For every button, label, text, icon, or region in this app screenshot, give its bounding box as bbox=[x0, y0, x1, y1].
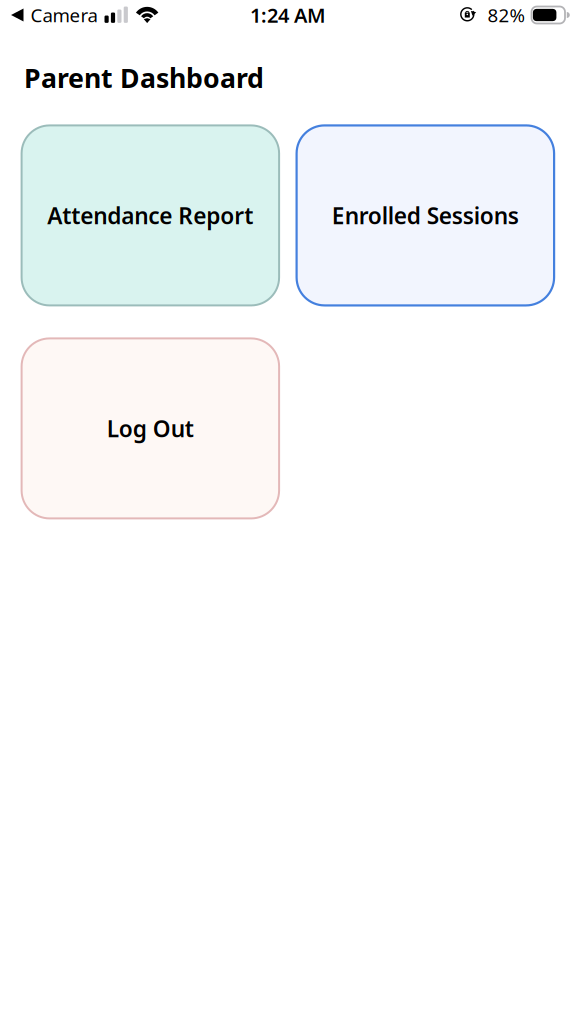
staticText: Attendance Report bbox=[47, 200, 253, 230]
staticText: Log Out bbox=[107, 413, 194, 443]
staticText: Enrolled Sessions bbox=[332, 200, 519, 230]
staticText: 1:24 AM bbox=[250, 2, 326, 28]
button[interactable]: Enrolled Sessions bbox=[297, 125, 554, 305]
staticText: Parent Dashboard bbox=[24, 60, 264, 95]
button[interactable]: Attendance Report bbox=[22, 125, 279, 305]
staticText: Camera bbox=[30, 3, 97, 27]
staticText: 82% bbox=[487, 3, 525, 27]
button[interactable]: Log Out bbox=[22, 338, 279, 518]
